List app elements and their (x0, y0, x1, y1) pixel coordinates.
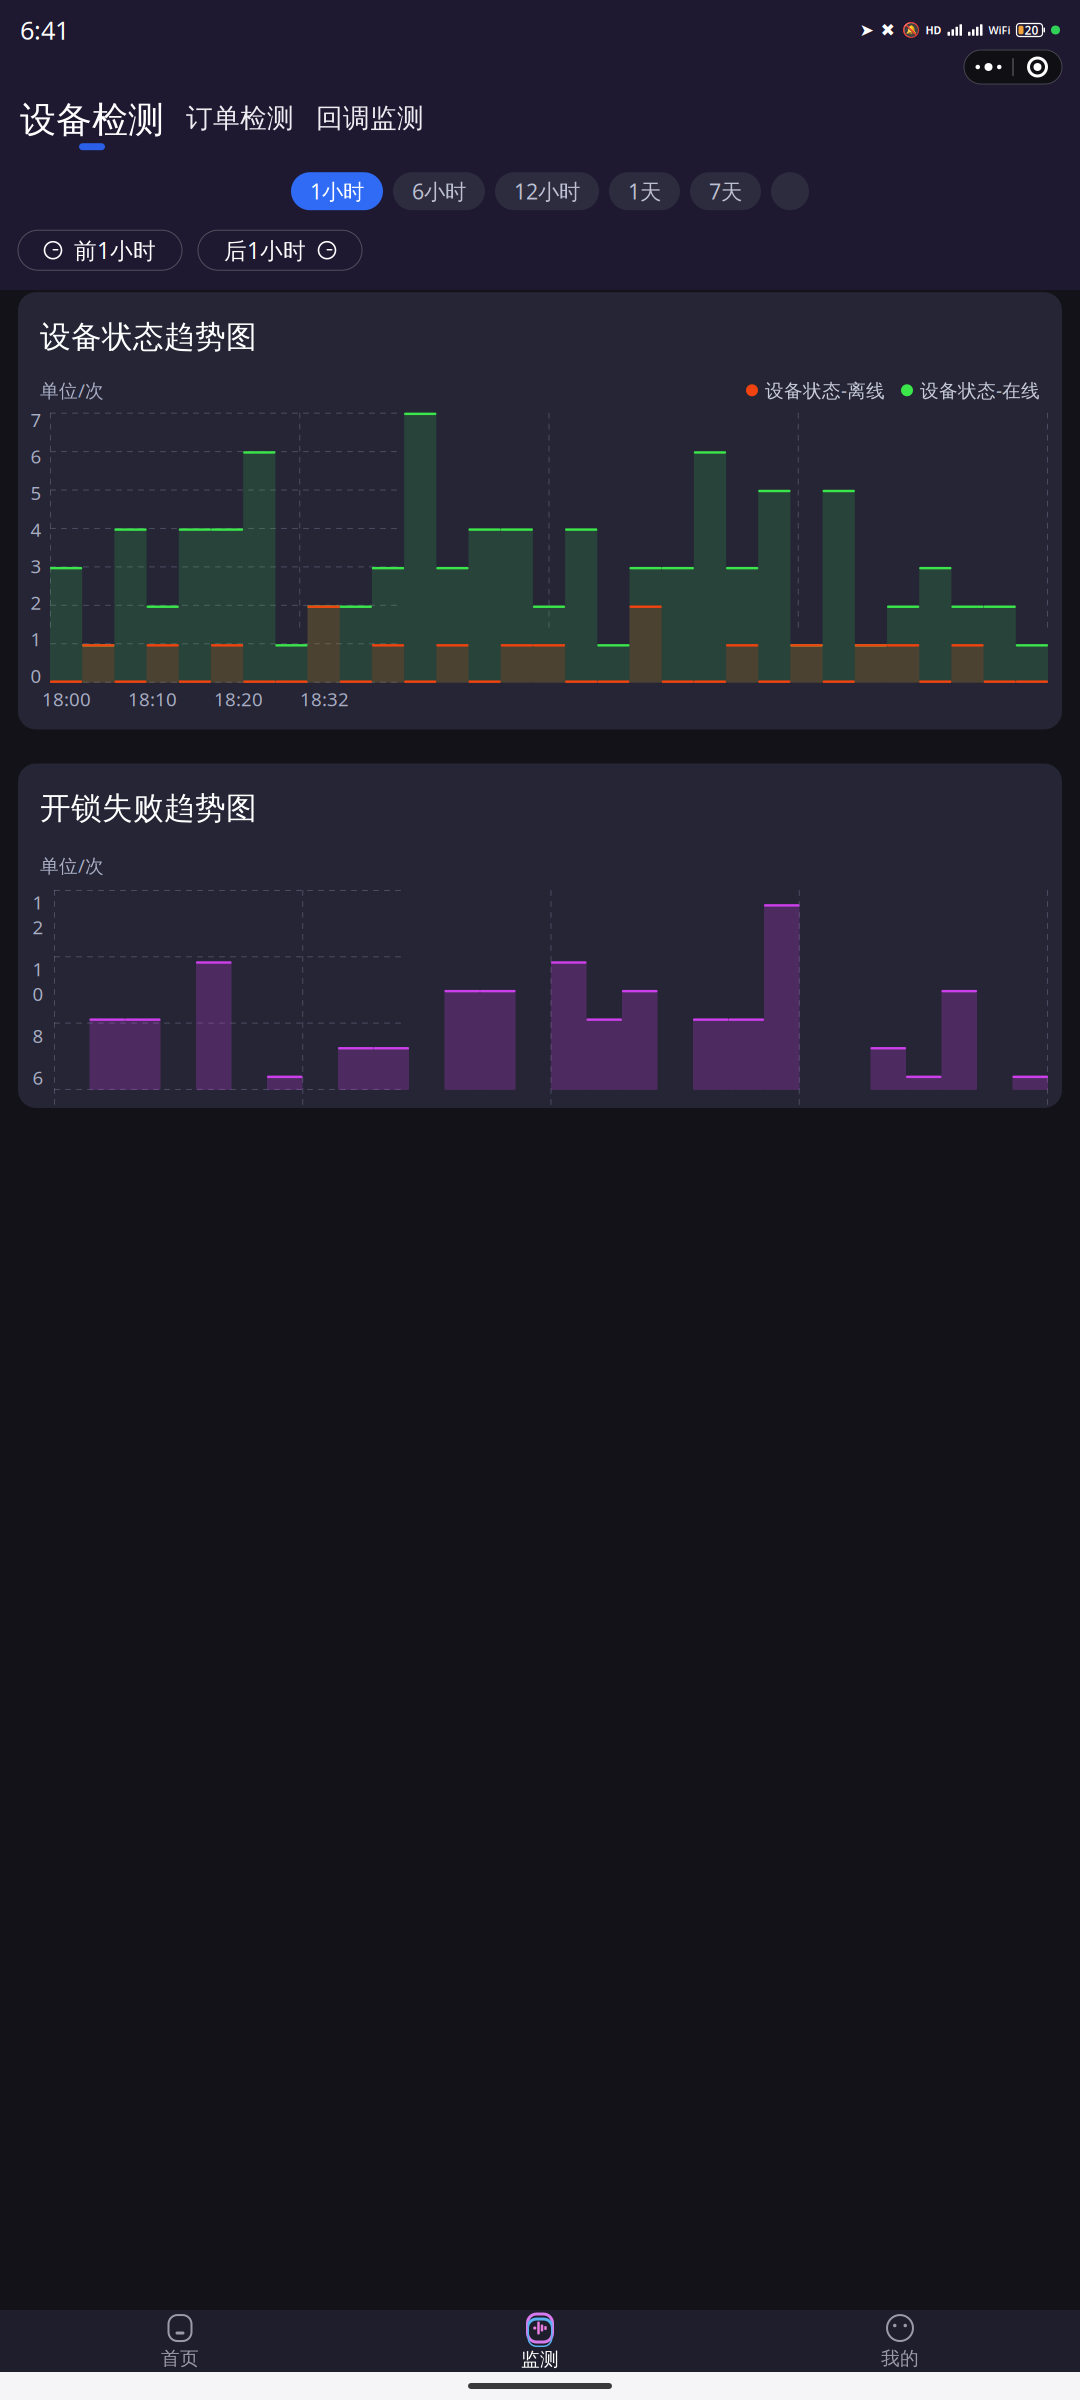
staticText: 1小时 (310, 177, 364, 205)
button[interactable]: 我的 (720, 2312, 1080, 2372)
staticText: ✖ (880, 20, 895, 40)
staticText: 后1小时 (224, 235, 306, 265)
staticText: 0 (30, 663, 41, 688)
button[interactable]: 监测 (360, 2311, 720, 2373)
staticText: 5 (30, 480, 41, 505)
staticText: 我的 (881, 2347, 919, 2370)
staticText: 1 (30, 627, 41, 651)
staticText: 设备状态-在线 (920, 378, 1040, 403)
button[interactable]: 6小时 (393, 172, 485, 210)
staticText: 7天 (709, 177, 742, 205)
staticText: 8 (32, 1023, 43, 1048)
staticText: 回调监测 (316, 102, 424, 135)
staticText: 7 (30, 407, 41, 432)
staticText: 18:00 (42, 687, 91, 711)
staticText: 首页 (161, 2347, 199, 2370)
staticText: 18:10 (128, 687, 177, 711)
staticText: 18:20 (214, 687, 263, 711)
staticText: WiFi (988, 23, 1010, 37)
staticText: 12 (32, 890, 43, 939)
staticText: 1天 (628, 177, 661, 205)
staticText: 6 (30, 444, 41, 469)
staticText: 12小时 (514, 177, 580, 205)
staticText: 开锁失败趋势图 (40, 789, 257, 827)
staticText: 2 (30, 590, 41, 615)
staticText: 前1小时 (74, 235, 156, 265)
staticText: 18:32 (300, 687, 349, 711)
staticText: 4 (30, 517, 41, 542)
staticText: 单位/次 (40, 378, 104, 403)
button[interactable]: 1小时 (291, 172, 383, 210)
button[interactable]: 回调监测 (316, 98, 424, 135)
staticText: 设备状态趋势图 (40, 318, 257, 356)
button[interactable]: 1天 (609, 172, 680, 210)
button[interactable]: 首页 (0, 2312, 360, 2372)
staticText: 设备状态-离线 (765, 378, 885, 403)
staticText: 设备检测 (20, 98, 164, 142)
button[interactable]: 订单检测 (186, 98, 294, 135)
staticText: 单位/次 (40, 853, 104, 878)
button[interactable]: 后1小时 (198, 230, 362, 270)
staticText: 6:41 (20, 13, 69, 47)
staticText: 3 (30, 554, 41, 578)
staticText: ➤ (859, 20, 874, 40)
staticText: 监测 (521, 2348, 559, 2371)
staticText: 6小时 (412, 177, 466, 205)
staticText: 10 (32, 957, 43, 1006)
button[interactable]: 设备检测 (20, 98, 164, 142)
button[interactable]: Close (1013, 51, 1061, 83)
staticText: 20 (1024, 22, 1038, 38)
button[interactable]: 12小时 (495, 172, 599, 210)
staticText: 订单检测 (186, 102, 294, 135)
button[interactable]: 前1小时 (18, 230, 182, 270)
button[interactable] (771, 172, 809, 210)
staticText: HD (925, 23, 941, 37)
staticText: 🔕 (901, 22, 919, 38)
button[interactable]: 7天 (690, 172, 761, 210)
button[interactable]: More (964, 51, 1012, 83)
staticText: 6 (32, 1065, 43, 1090)
